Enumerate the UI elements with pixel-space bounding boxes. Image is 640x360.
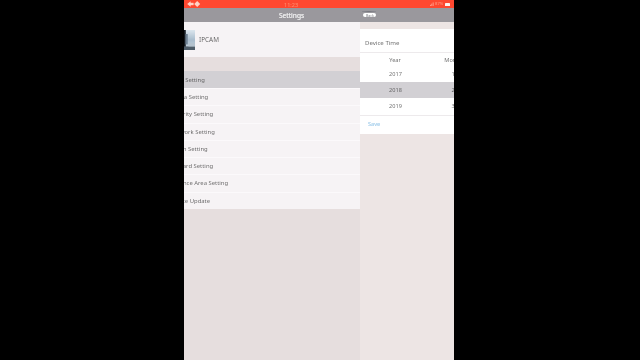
button[interactable]: Time Setting — [184, 71, 360, 89]
staticText: 2019 — [389, 102, 402, 110]
button[interactable]: Alarm Setting — [184, 140, 360, 158]
button[interactable]: IPCAM — [184, 22, 360, 57]
staticText: Year — [389, 56, 401, 64]
staticText: Network Setting — [184, 128, 215, 136]
staticText: 2 — [451, 86, 454, 94]
button[interactable]: 2019 — [360, 98, 454, 114]
staticText: Device Time — [365, 38, 400, 46]
button[interactable]: Media Setting — [184, 88, 360, 106]
staticText: Security Setting — [184, 110, 214, 118]
button[interactable]: Device Update — [184, 192, 360, 209]
staticText: Month — [444, 56, 454, 64]
staticText: 1 — [451, 70, 454, 78]
staticText: Back — [366, 13, 374, 17]
button[interactable]: Save — [368, 120, 381, 128]
staticText: Settings — [279, 11, 305, 20]
staticText: Time Setting — [184, 76, 205, 84]
staticText: IPCAM — [199, 35, 219, 44]
button[interactable]: Security Setting — [184, 105, 360, 123]
button[interactable]: Back — [363, 13, 376, 17]
staticText: Device Update — [184, 197, 211, 205]
button[interactable]: Network Setting — [184, 123, 360, 141]
staticText: 87% — [435, 1, 444, 7]
button[interactable]: 2017 — [360, 66, 454, 82]
button[interactable]: Defence Area Setting — [184, 174, 360, 192]
staticText: 2018 — [389, 86, 402, 94]
button[interactable]: SD Card Setting — [184, 157, 360, 175]
staticText: Media Setting — [184, 93, 209, 101]
staticText: 11:23 — [284, 1, 299, 8]
staticText: 2017 — [389, 70, 402, 78]
staticText: SD Card Setting — [184, 162, 214, 170]
staticText: Alarm Setting — [184, 145, 208, 153]
staticText: 3 — [451, 102, 454, 110]
staticText: Defence Area Setting — [184, 179, 229, 187]
button[interactable]: 2018 — [360, 82, 454, 98]
